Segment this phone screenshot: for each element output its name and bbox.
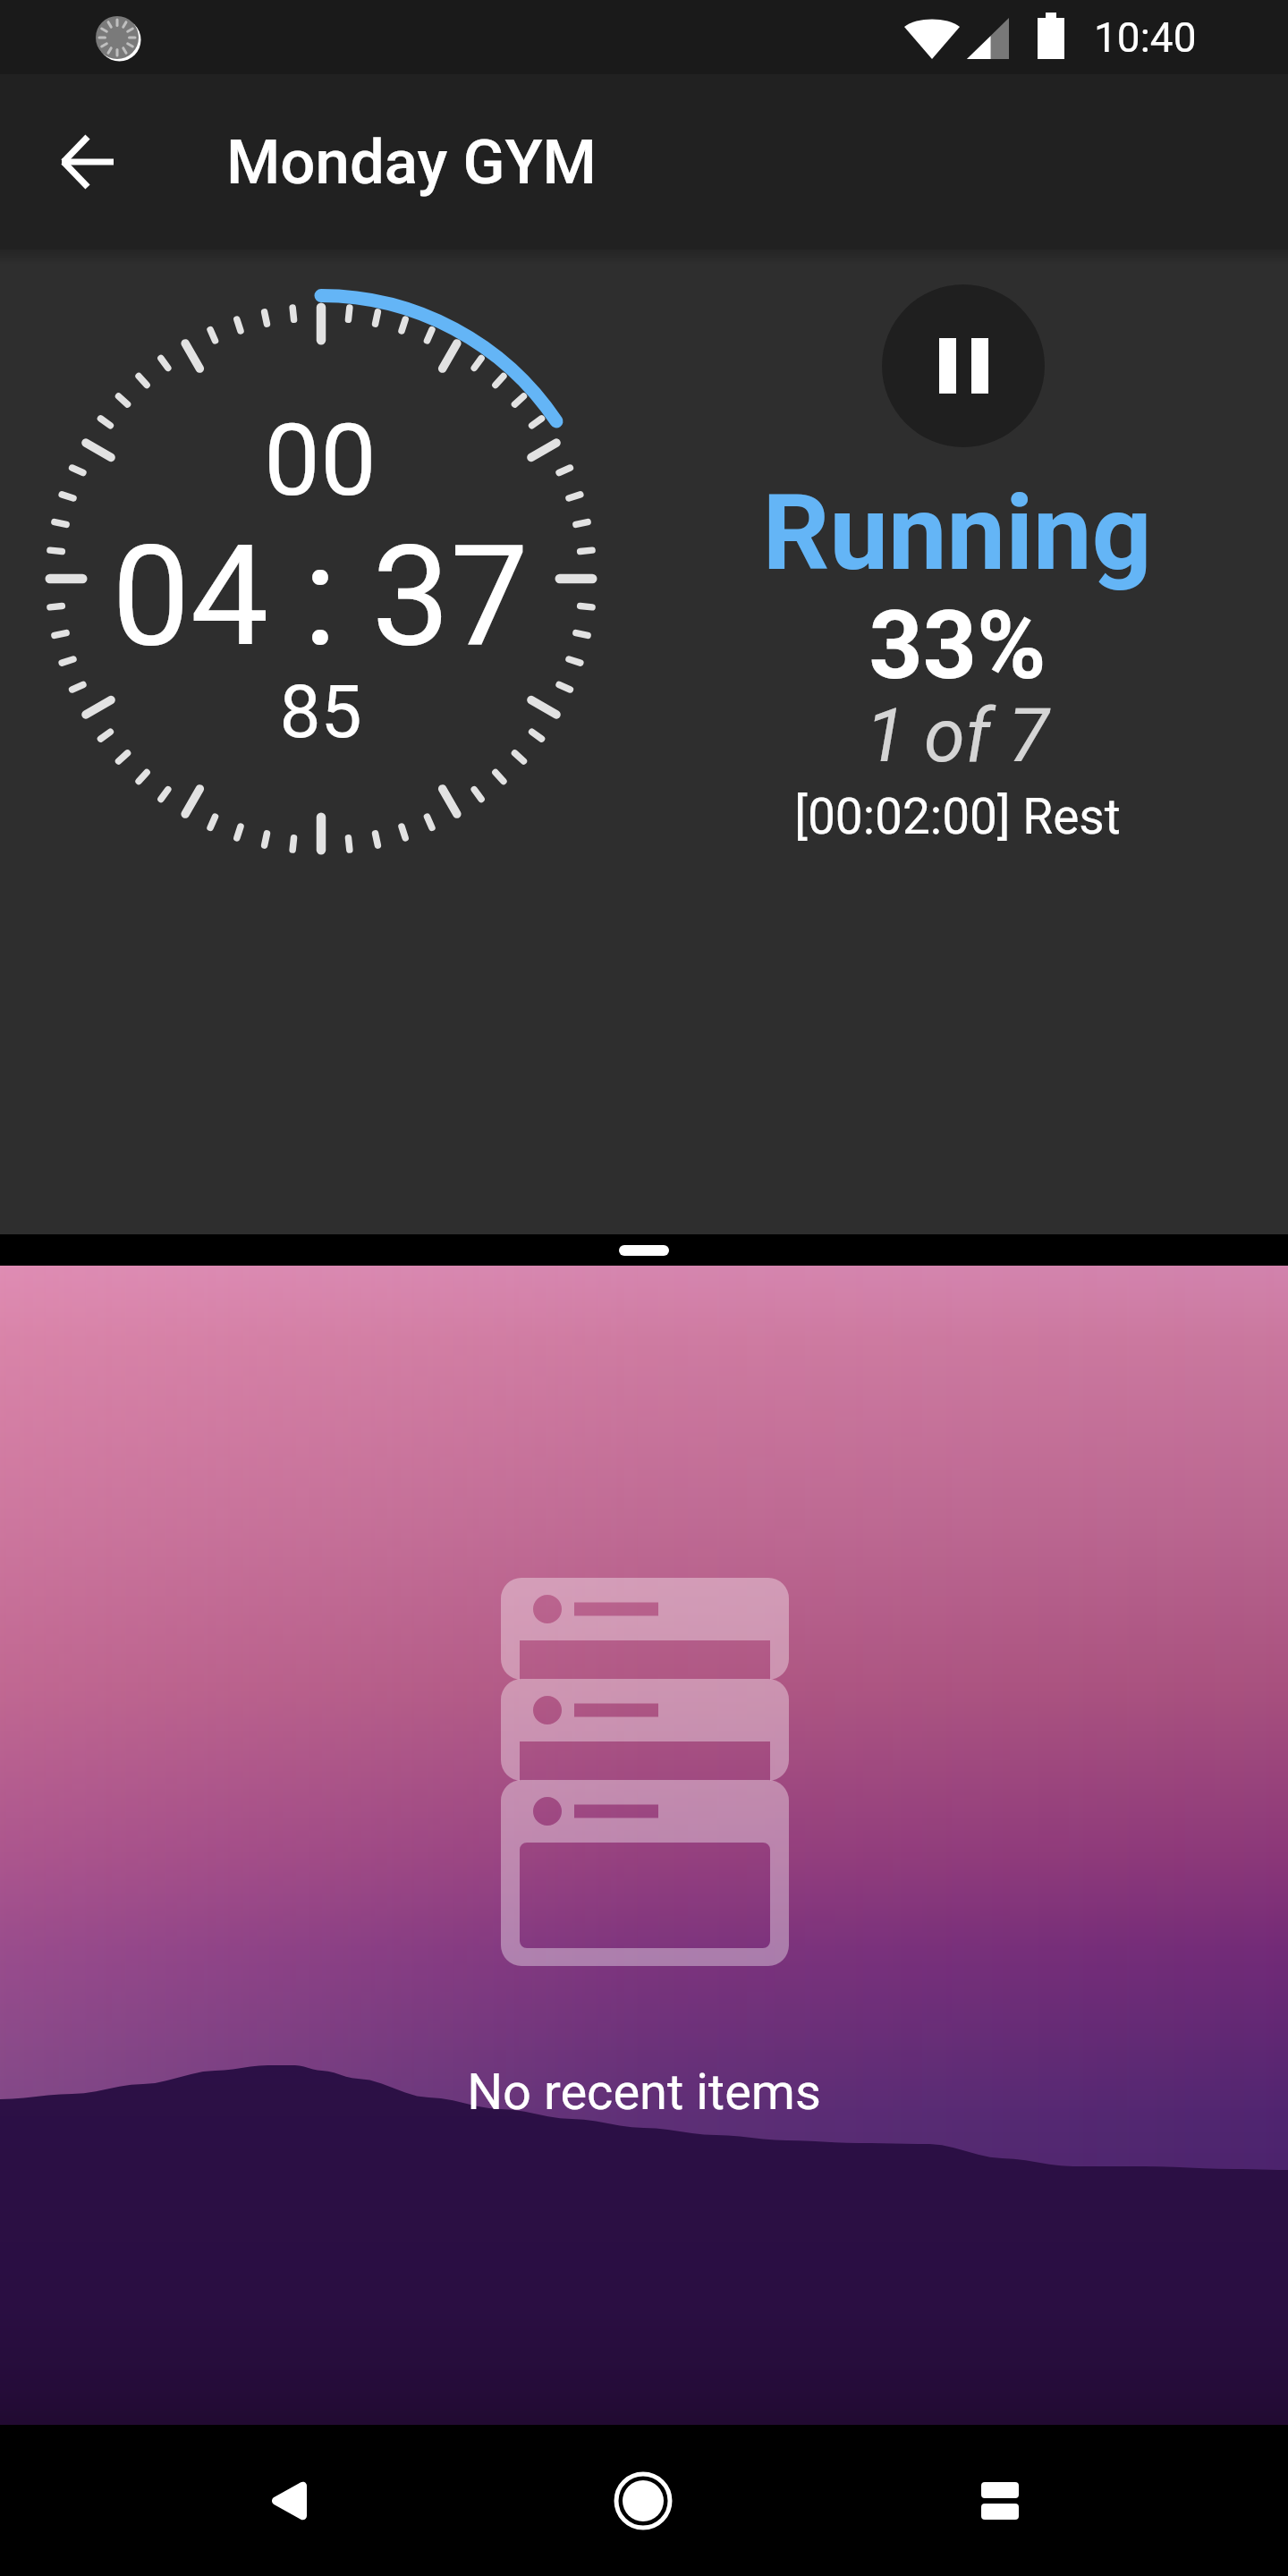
- staticText: 10:40: [1094, 13, 1197, 62]
- button[interactable]: Back: [180, 2425, 394, 2576]
- staticText: 33%: [869, 591, 1046, 701]
- staticText: 85: [279, 669, 362, 755]
- staticText: 00: [264, 402, 377, 519]
- button[interactable]: Navigate up: [43, 117, 132, 207]
- button[interactable]: Recent apps: [893, 2425, 1107, 2576]
- staticText: Monday GYM: [226, 126, 597, 199]
- staticText: 1 of 7: [865, 692, 1049, 779]
- button[interactable]: Home: [536, 2425, 750, 2576]
- staticText: [00:02:00] Rest: [794, 788, 1121, 845]
- staticText: Running: [762, 471, 1152, 594]
- staticText: No recent items: [467, 2063, 821, 2122]
- button[interactable]: Pause: [882, 284, 1045, 447]
- staticText: 04 : 37: [112, 514, 529, 678]
